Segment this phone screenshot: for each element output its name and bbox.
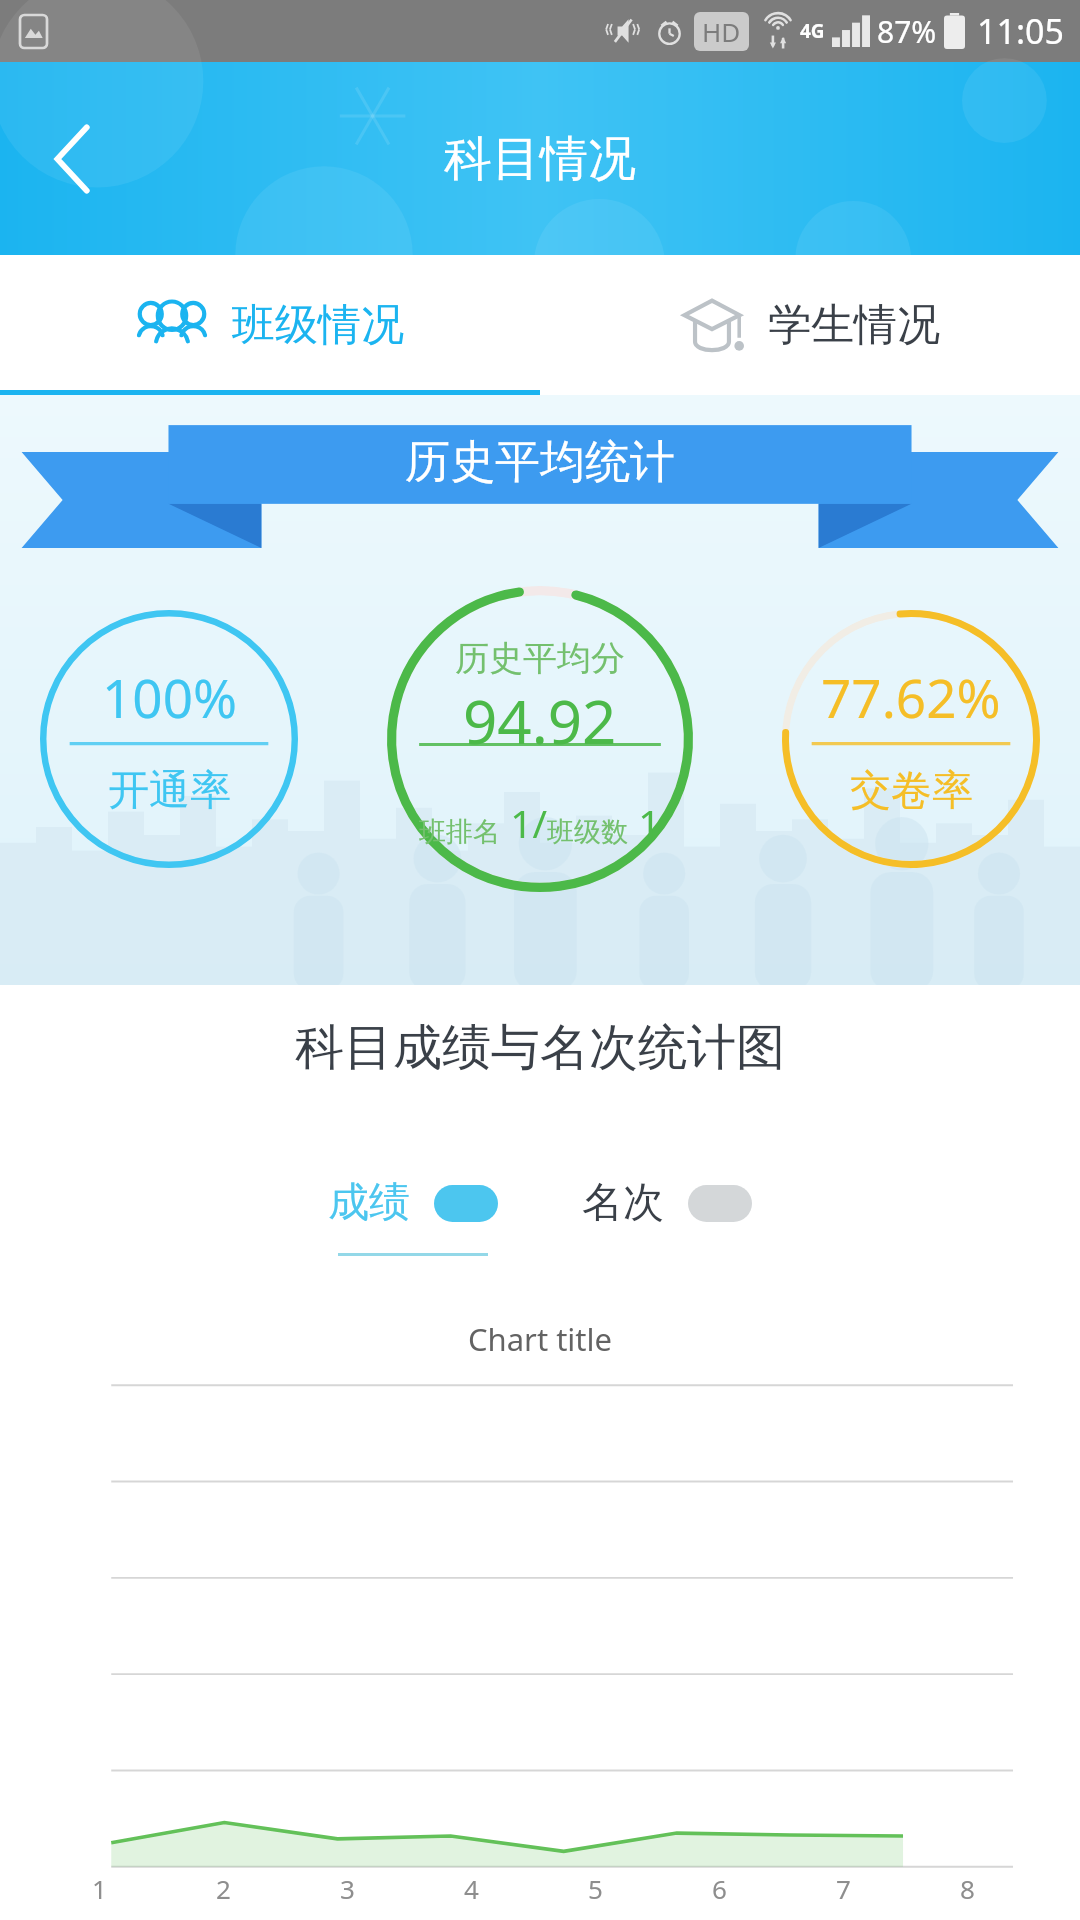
staticText: 100% bbox=[102, 661, 237, 733]
button[interactable]: 班级情况 bbox=[0, 255, 540, 395]
staticText: 5 bbox=[588, 1871, 603, 1906]
staticText: HD bbox=[702, 14, 741, 49]
staticText: 1 bbox=[628, 796, 661, 849]
button[interactable]: 名次 bbox=[582, 1177, 752, 1229]
staticText: 94.92 bbox=[463, 680, 617, 762]
staticText: 科目情况 bbox=[444, 129, 636, 189]
staticText: 交卷率 bbox=[850, 765, 973, 817]
staticText: 科目成绩与名次统计图 bbox=[0, 1017, 1080, 1079]
staticText: Chart title bbox=[0, 1318, 1080, 1360]
button[interactable]: 学生情况 bbox=[540, 255, 1080, 395]
staticText: 1/ bbox=[500, 796, 547, 849]
staticText: 3 bbox=[340, 1871, 355, 1906]
staticText: 4G bbox=[800, 18, 825, 44]
staticText: 1 bbox=[92, 1871, 107, 1906]
staticText: 成绩 bbox=[328, 1177, 410, 1229]
staticText: 班级数 bbox=[547, 815, 628, 849]
staticText: 学生情况 bbox=[768, 298, 940, 352]
staticText: 开通率 bbox=[108, 765, 231, 817]
button[interactable]: 成绩 bbox=[328, 1177, 498, 1256]
staticText: 2 bbox=[216, 1871, 231, 1906]
staticText: 4 bbox=[464, 1871, 479, 1906]
staticText: 6 bbox=[712, 1871, 727, 1906]
button[interactable]: Back bbox=[0, 62, 145, 255]
staticText: 77.62% bbox=[821, 661, 1001, 733]
staticText: 名次 bbox=[582, 1177, 664, 1229]
staticText: 11:05 bbox=[977, 8, 1064, 54]
staticText: 历史平均分 bbox=[455, 637, 625, 680]
staticText: 7 bbox=[836, 1871, 851, 1906]
staticText: 班排名 bbox=[419, 815, 500, 849]
staticText: 87% bbox=[877, 11, 937, 52]
staticText: 历史平均统计 bbox=[405, 434, 675, 491]
staticText: 班级情况 bbox=[232, 298, 404, 352]
